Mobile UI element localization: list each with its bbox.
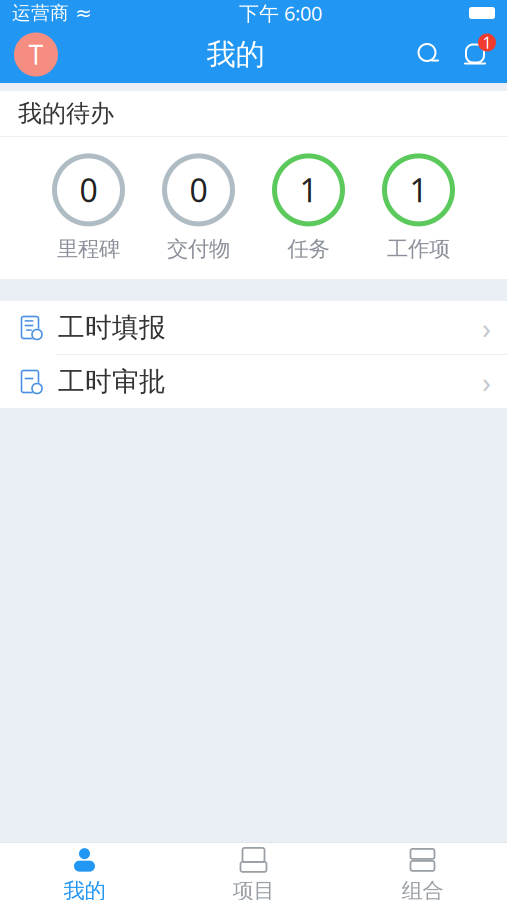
staticText: 我的待办 [18, 99, 114, 128]
button[interactable]: Search [407, 32, 451, 76]
staticText: 1 [482, 32, 491, 53]
button[interactable]: 我的 [0, 839, 169, 900]
staticText: 项目 [232, 878, 274, 900]
staticText: 0 [79, 169, 97, 211]
staticText: 运营商 [12, 1, 69, 24]
button[interactable]: 组合 [338, 839, 507, 900]
staticText: 工时填报 [58, 311, 166, 344]
staticText: 里程碑 [57, 236, 120, 262]
staticText: 交付物 [167, 236, 230, 262]
button[interactable]: 工时填报 [0, 301, 507, 355]
staticText: 我的 [206, 36, 264, 72]
staticText: 0 [189, 169, 207, 211]
staticText: 我的 [63, 878, 105, 900]
staticText: › [482, 362, 491, 401]
staticText: › [482, 308, 491, 347]
staticText: T [28, 37, 43, 72]
button[interactable]: 1 [253, 154, 363, 262]
staticText: 1 [409, 169, 427, 211]
button[interactable]: 1 [363, 154, 473, 262]
staticText: ≈ [75, 2, 92, 24]
button[interactable]: 工时审批 [0, 355, 507, 408]
staticText: 工时审批 [58, 365, 166, 398]
button[interactable]: 0 [33, 154, 143, 262]
staticText: 1 [299, 169, 317, 211]
button[interactable]: Notifications [451, 30, 499, 78]
button[interactable]: Profile [8, 26, 64, 82]
button[interactable]: 0 [143, 154, 253, 262]
staticText: 组合 [401, 878, 443, 900]
staticText: 工作项 [387, 236, 450, 262]
button[interactable]: 项目 [169, 839, 338, 900]
staticText: 下午 6:00 [239, 0, 322, 26]
staticText: 任务 [287, 236, 329, 262]
